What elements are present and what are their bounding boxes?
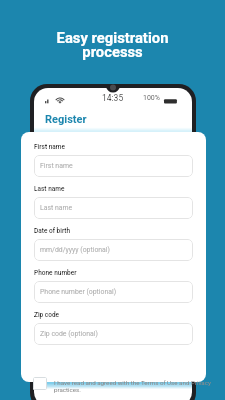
staticText: Easy registration processs: [0, 29, 225, 61]
staticText: 100%: [143, 94, 160, 102]
button[interactable]: Accept privacy practices: [33, 377, 47, 390]
button[interactable]: Last name: [34, 197, 193, 219]
staticText: Zip code: [34, 311, 60, 319]
button[interactable]: First name: [34, 155, 193, 177]
staticText: First name: [40, 162, 73, 170]
staticText: Date of birth: [34, 227, 71, 235]
staticText: I have read and agreed with the Terms of…: [54, 379, 211, 394]
staticText: Last name: [34, 185, 65, 193]
staticText: 14:35: [102, 93, 124, 103]
staticText: First name: [34, 143, 65, 151]
button[interactable]: Zip code (optional): [34, 323, 193, 345]
button[interactable]: Phone number (optional): [34, 281, 193, 303]
staticText: mm/dd/yyyy (optional): [40, 246, 110, 254]
staticText: Phone number: [34, 269, 77, 277]
staticText: Phone number (optional): [40, 288, 117, 296]
button[interactable]: mm/dd/yyyy (optional): [34, 239, 193, 261]
staticText: Zip code (optional): [40, 330, 98, 338]
staticText: Register: [45, 113, 87, 126]
staticText: Last name: [40, 204, 73, 212]
